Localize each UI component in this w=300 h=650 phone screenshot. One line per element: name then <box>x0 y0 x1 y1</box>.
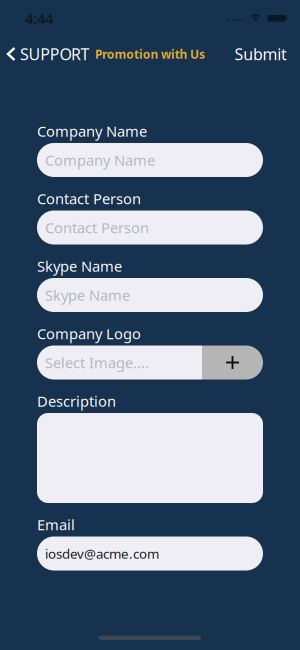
button[interactable]: Description text entry <box>37 413 263 503</box>
staticText: Contact Person <box>45 218 149 237</box>
staticText: Contact Person <box>37 189 141 208</box>
button[interactable]: Contact Person <box>37 210 263 244</box>
staticText: Company Name <box>45 150 155 170</box>
staticText: Skype Name <box>37 256 122 276</box>
button[interactable]: iosdev@acme.com <box>37 536 263 570</box>
staticText: Company Name <box>37 121 147 141</box>
staticText: Promotion with Us <box>95 46 205 62</box>
button[interactable]: Select company logo image <box>37 345 263 379</box>
button[interactable]: Submit <box>234 43 300 65</box>
staticText: SUPPORT <box>20 43 90 65</box>
staticText: Select Image.... <box>45 353 149 372</box>
staticText: 4:44 <box>25 9 53 28</box>
button[interactable]: Company Name <box>37 143 263 177</box>
staticText: Skype Name <box>45 285 130 305</box>
staticText: Email <box>37 515 75 534</box>
staticText: Description <box>37 391 116 411</box>
button[interactable]: Back to Support <box>0 43 90 65</box>
staticText: Company Logo <box>37 324 141 343</box>
staticText: iosdev@acme.com <box>45 545 159 562</box>
staticText: Submit <box>234 43 287 65</box>
button[interactable]: Skype Name <box>37 278 263 312</box>
